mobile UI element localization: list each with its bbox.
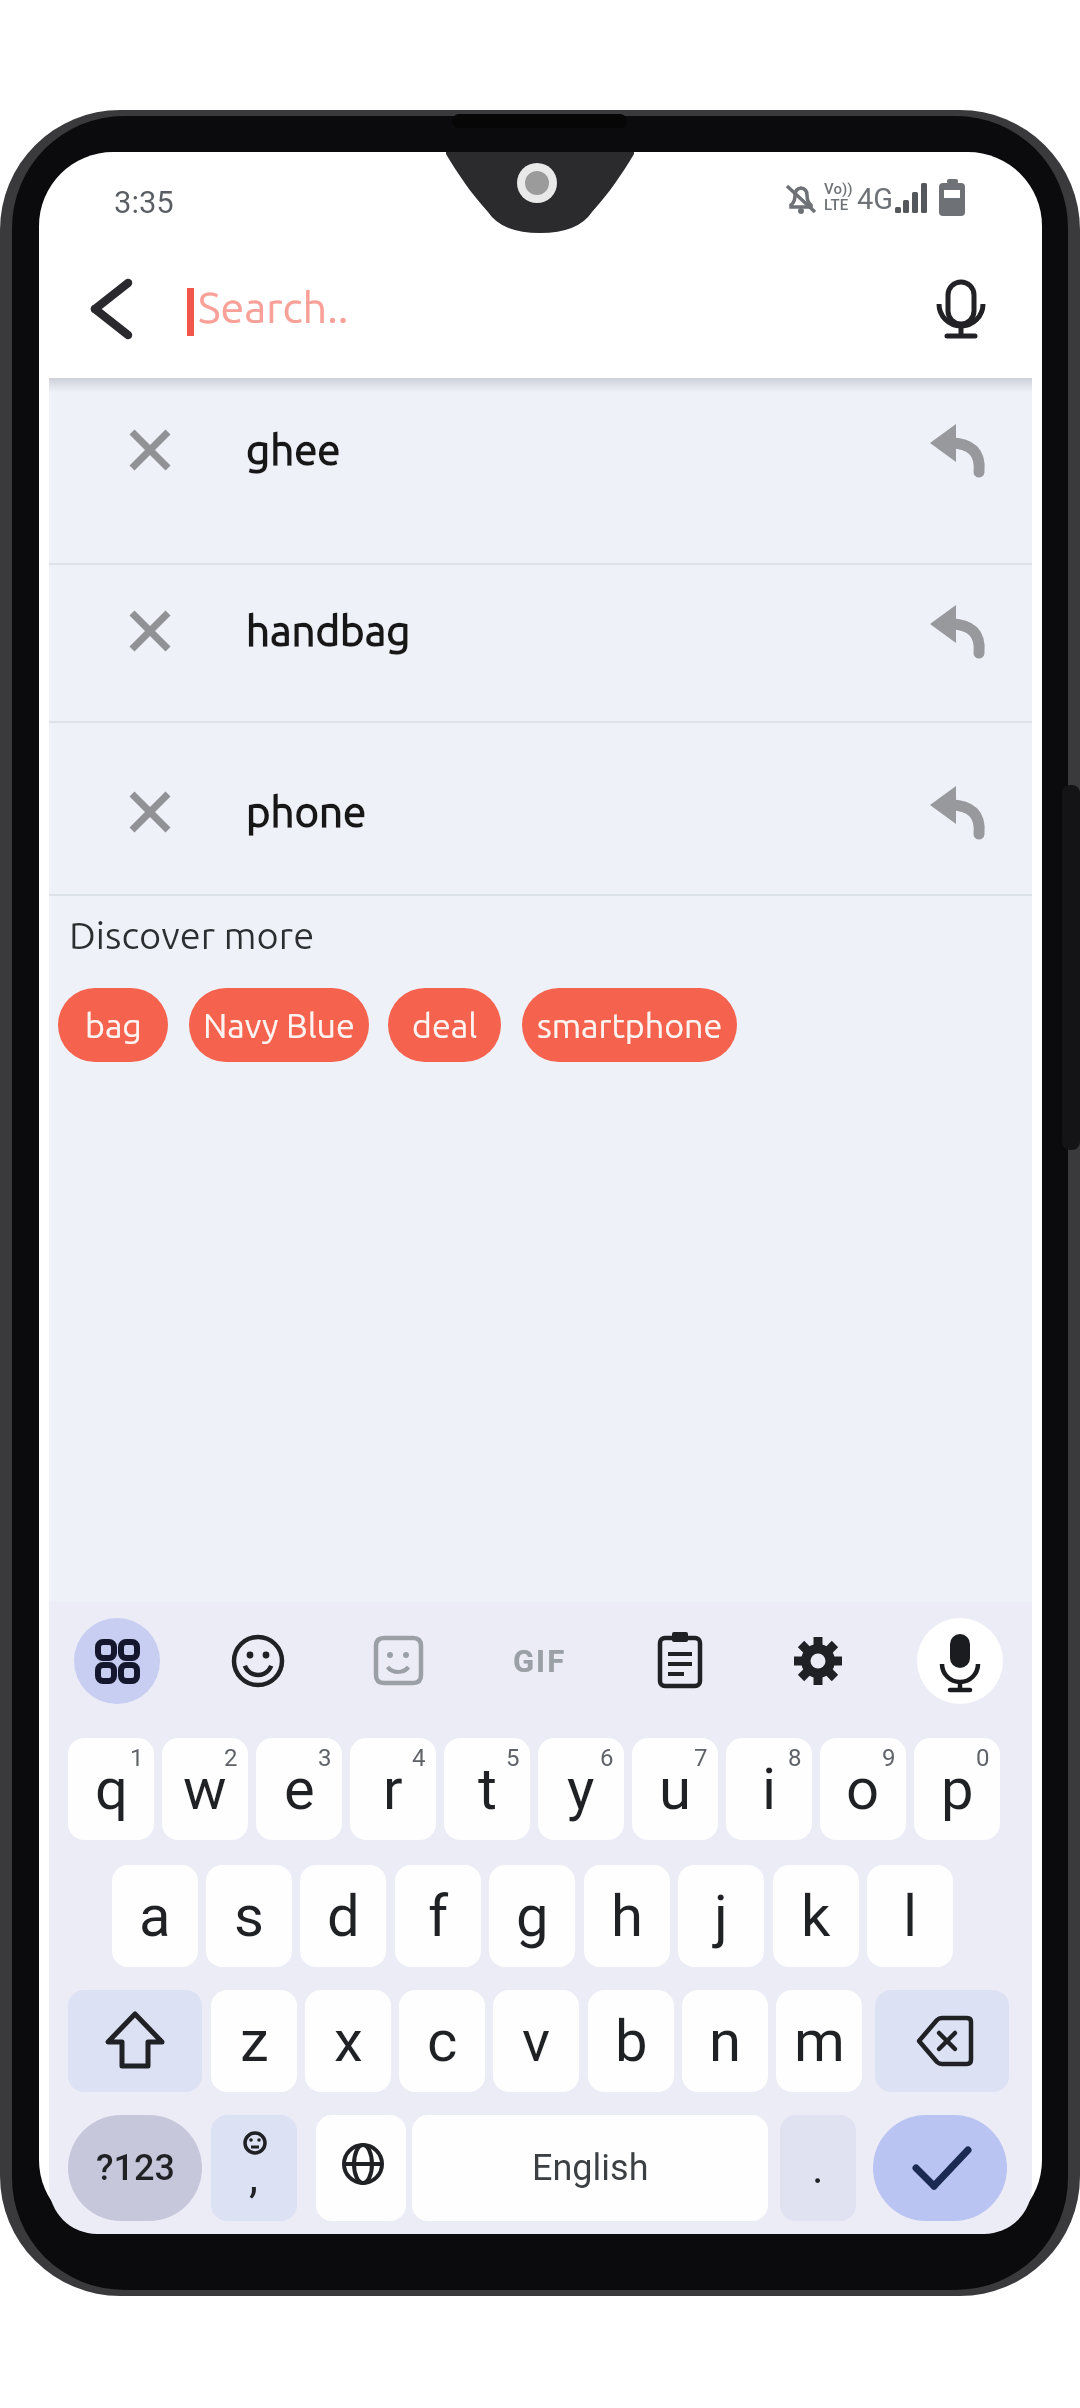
button[interactable] xyxy=(786,1629,850,1693)
button[interactable]: smartphone xyxy=(522,988,737,1062)
button[interactable]: c xyxy=(399,1990,485,2092)
button[interactable]: d xyxy=(300,1865,386,1967)
staticText: g xyxy=(516,1882,549,1950)
staticText: Discover more xyxy=(69,914,315,957)
button[interactable] xyxy=(925,270,1005,360)
button[interactable] xyxy=(875,1990,1009,2092)
button[interactable]: r xyxy=(350,1738,436,1840)
staticText: 4 xyxy=(412,1744,426,1772)
button[interactable]: g xyxy=(489,1865,575,1967)
button[interactable]: b xyxy=(588,1990,674,2092)
staticText: Navy Blue xyxy=(203,1006,355,1044)
staticText: l xyxy=(903,1882,918,1950)
button[interactable]: w xyxy=(162,1738,248,1840)
button[interactable]: bag xyxy=(58,988,168,1062)
button[interactable]: i xyxy=(726,1738,812,1840)
button[interactable]: Navy Blue xyxy=(189,988,369,1062)
staticText: m xyxy=(794,2007,845,2075)
button[interactable] xyxy=(74,1618,160,1704)
staticText: Vo)) xyxy=(824,180,853,198)
staticText: ghee xyxy=(246,426,341,473)
staticText: 3:35 xyxy=(114,184,174,220)
button[interactable]: s xyxy=(206,1865,292,1967)
staticText: 1 xyxy=(130,1744,144,1772)
staticText: j xyxy=(714,1882,728,1950)
staticText: b xyxy=(615,2007,648,2075)
button[interactable]: j xyxy=(678,1865,764,1967)
button[interactable]: v xyxy=(493,1990,579,2092)
button[interactable] xyxy=(124,424,176,476)
button[interactable] xyxy=(928,605,988,657)
button[interactable]: , xyxy=(211,2115,297,2221)
button[interactable] xyxy=(316,2115,406,2221)
button[interactable]: t xyxy=(444,1738,530,1840)
staticText: i xyxy=(762,1755,777,1823)
staticText: n xyxy=(709,2007,742,2075)
staticText: smartphone xyxy=(537,1006,723,1044)
button[interactable]: m xyxy=(776,1990,862,2092)
staticText: o xyxy=(846,1755,880,1823)
button[interactable]: u xyxy=(632,1738,718,1840)
button[interactable]: y xyxy=(538,1738,624,1840)
button[interactable]: a xyxy=(112,1865,198,1967)
button[interactable] xyxy=(124,605,176,657)
staticText: t xyxy=(478,1755,497,1823)
button[interactable]: l xyxy=(867,1865,953,1967)
button[interactable]: . xyxy=(780,2115,856,2221)
staticText: c xyxy=(427,2007,458,2075)
staticText: y xyxy=(567,1755,595,1823)
button[interactable] xyxy=(68,1990,202,2092)
staticText: 5 xyxy=(506,1744,520,1772)
button[interactable] xyxy=(226,1629,290,1693)
button[interactable] xyxy=(648,1628,712,1694)
staticText: Search.. xyxy=(198,283,349,331)
button[interactable]: p xyxy=(914,1738,1000,1840)
staticText: bag xyxy=(85,1006,142,1044)
staticText: 6 xyxy=(600,1744,614,1772)
button[interactable] xyxy=(49,368,1032,532)
staticText: x xyxy=(334,2007,363,2075)
staticText: ?123 xyxy=(96,2147,175,2189)
staticText: z xyxy=(240,2007,269,2075)
button[interactable]: ?123 xyxy=(68,2115,202,2221)
staticText: deal xyxy=(412,1006,478,1044)
button[interactable]: f xyxy=(395,1865,481,1967)
button[interactable]: deal xyxy=(388,988,501,1062)
staticText: a xyxy=(139,1882,171,1950)
staticText: h xyxy=(611,1882,643,1950)
staticText: p xyxy=(941,1755,974,1823)
staticText: e xyxy=(284,1755,315,1823)
button[interactable] xyxy=(49,549,1032,713)
staticText: u xyxy=(659,1755,691,1823)
button[interactable]: English xyxy=(412,2115,768,2221)
button[interactable]: e xyxy=(256,1738,342,1840)
button[interactable] xyxy=(124,786,176,838)
staticText: 0 xyxy=(976,1744,990,1772)
button[interactable] xyxy=(917,1618,1003,1704)
button[interactable] xyxy=(873,2115,1007,2221)
button[interactable]: q xyxy=(68,1738,154,1840)
button[interactable]: x xyxy=(305,1990,391,2092)
staticText: w xyxy=(183,1755,227,1823)
button[interactable] xyxy=(928,424,988,476)
button[interactable]: o xyxy=(820,1738,906,1840)
staticText: GIF xyxy=(513,1643,567,1679)
staticText: s xyxy=(234,1882,264,1950)
staticText: k xyxy=(801,1882,831,1950)
staticText: q xyxy=(95,1755,128,1823)
staticText: English xyxy=(532,2147,649,2189)
button[interactable] xyxy=(49,730,1032,894)
button[interactable]: k xyxy=(773,1865,859,1967)
button[interactable]: n xyxy=(682,1990,768,2092)
staticText: handbag xyxy=(246,607,411,654)
staticText: 8 xyxy=(788,1744,802,1772)
button[interactable]: h xyxy=(584,1865,670,1967)
button[interactable] xyxy=(366,1628,432,1694)
button[interactable]: GIF xyxy=(495,1638,585,1684)
button[interactable]: z xyxy=(211,1990,297,2092)
staticText: f xyxy=(428,1882,449,1950)
button[interactable] xyxy=(928,786,988,838)
staticText: phone xyxy=(246,788,367,835)
staticText: 2 xyxy=(224,1744,238,1772)
button[interactable] xyxy=(80,270,200,360)
